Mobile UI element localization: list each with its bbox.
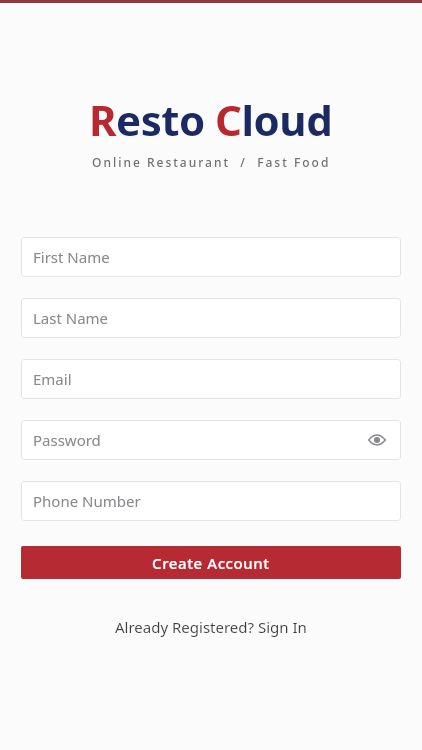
- staticText: Password: [33, 430, 101, 450]
- staticText: Already Registered? Sign In: [115, 617, 307, 637]
- staticText: Create Account: [152, 553, 270, 573]
- button[interactable]: First Name: [21, 237, 401, 277]
- button[interactable]: Already Registered? Sign In: [107, 613, 315, 641]
- button[interactable]: Phone Number: [21, 481, 401, 521]
- staticText: Email: [33, 369, 72, 389]
- staticText: First Name: [33, 247, 110, 267]
- button[interactable]: Show password: [365, 428, 389, 452]
- button[interactable]: Last Name: [21, 298, 401, 338]
- button[interactable]: Email: [21, 359, 401, 399]
- staticText: Online Restaurant / Fast Food: [92, 154, 331, 170]
- staticText: Phone Number: [33, 491, 141, 511]
- button[interactable]: Create Account: [21, 546, 401, 579]
- staticText: Resto Cloud: [89, 91, 333, 148]
- staticText: Last Name: [33, 308, 109, 328]
- button[interactable]: Password: [21, 420, 401, 460]
